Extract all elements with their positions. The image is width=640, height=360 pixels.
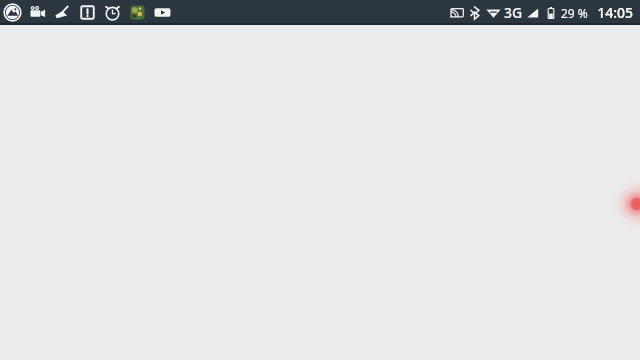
staticText: 3G — [504, 3, 523, 22]
staticText: 29 % — [561, 5, 588, 21]
button[interactable]: Battery — [546, 5, 556, 21]
button[interactable]: Screen recorder — [28, 3, 47, 22]
button[interactable]: Game notification — [128, 3, 147, 22]
button[interactable]: Bluetooth — [469, 5, 481, 21]
button[interactable]: Alarm — [103, 3, 122, 22]
button[interactable]: Cast — [448, 5, 465, 21]
button[interactable]: YouTube — [153, 3, 172, 22]
button[interactable]: Wi-Fi — [485, 5, 502, 21]
button[interactable]: Mobile signal — [525, 5, 539, 21]
button[interactable]: Cleaner — [53, 3, 72, 22]
button[interactable]: Alert — [78, 3, 97, 22]
button[interactable]: Gallery app — [3, 3, 22, 22]
staticText: 14:05 — [597, 3, 633, 22]
